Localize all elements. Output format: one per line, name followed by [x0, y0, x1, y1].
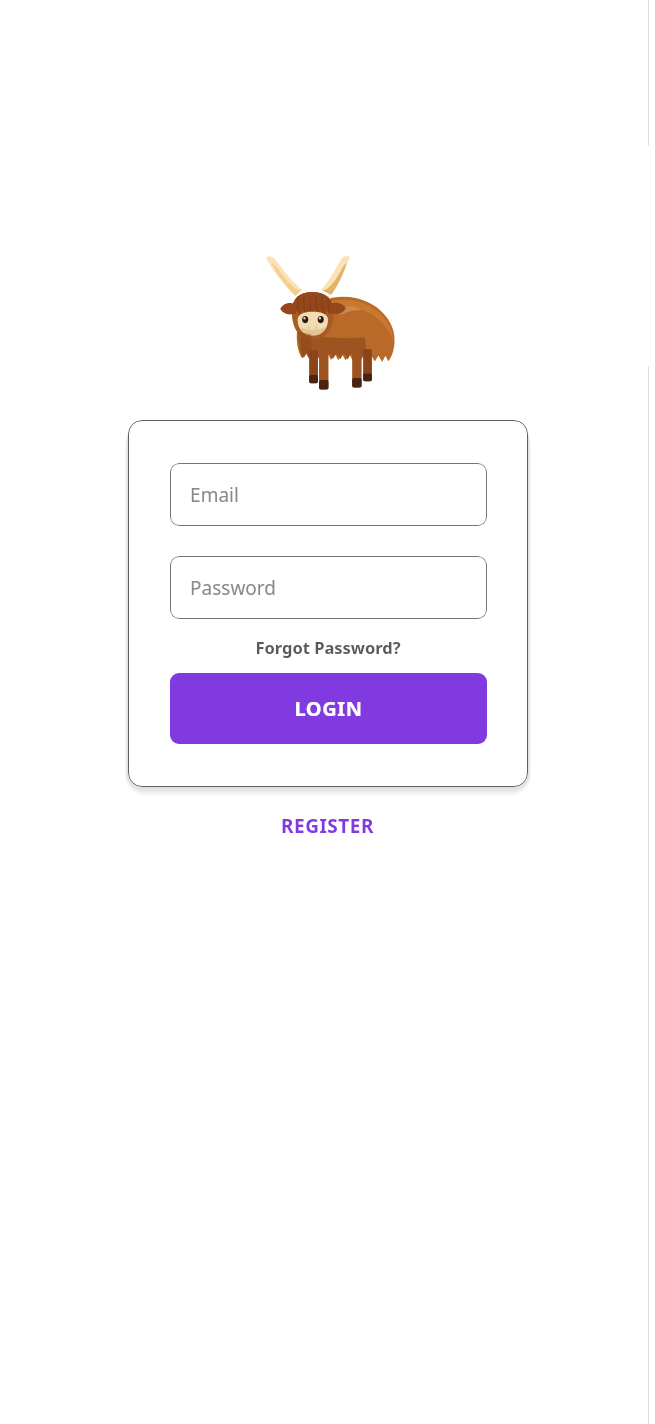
- staticText: Email: [190, 482, 239, 508]
- button[interactable]: Password: [170, 556, 487, 619]
- button[interactable]: LOGIN: [170, 673, 487, 744]
- button[interactable]: Forgot Password?: [249, 633, 407, 661]
- button[interactable]: Email: [170, 463, 487, 526]
- button[interactable]: REGISTER: [271, 808, 384, 844]
- staticText: Password: [190, 575, 276, 601]
- staticText: Forgot Password?: [255, 636, 401, 658]
- staticText: LOGIN: [294, 695, 363, 722]
- staticText: REGISTER: [281, 813, 374, 839]
